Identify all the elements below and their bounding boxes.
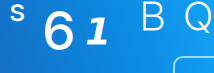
staticText: 1 (85, 10, 111, 53)
staticText: B (140, 0, 165, 40)
staticText: 6 (42, 0, 76, 63)
staticText: S (9, 0, 25, 27)
staticText: Q (183, 0, 212, 40)
